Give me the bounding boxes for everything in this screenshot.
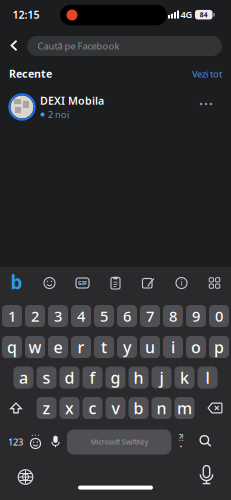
button[interactable]: More options: [196, 96, 216, 112]
button[interactable]: Bing search: [6, 275, 26, 291]
button[interactable]: i: [163, 336, 183, 358]
staticText: e: [53, 336, 62, 358]
button[interactable]: Clipboard: [105, 275, 125, 291]
staticText: 4G: [180, 8, 192, 21]
button[interactable]: z: [36, 397, 56, 419]
button[interactable]: a: [13, 366, 33, 388]
staticText: p: [214, 336, 224, 358]
button[interactable]: 2: [25, 305, 45, 327]
button[interactable]: 3: [48, 305, 68, 327]
staticText: 4: [77, 306, 85, 326]
staticText: 3: [54, 306, 62, 326]
staticText: 12:15: [12, 7, 39, 22]
button[interactable]: 5: [94, 305, 114, 327]
button[interactable]: l: [197, 366, 217, 388]
staticText: q: [7, 336, 17, 358]
staticText: 84: [200, 10, 208, 19]
staticText: i: [180, 278, 182, 288]
button[interactable]: Back: [6, 36, 22, 54]
button[interactable]: Shift: [2, 397, 30, 419]
staticText: ?!: [178, 433, 183, 443]
button[interactable]: m: [174, 397, 194, 419]
button[interactable]: 7: [140, 305, 160, 327]
button[interactable]: h: [128, 366, 148, 388]
button[interactable]: n: [151, 397, 171, 419]
staticText: t: [101, 336, 107, 358]
button[interactable]: p: [209, 336, 229, 358]
button[interactable]: y: [117, 336, 137, 358]
button[interactable]: DEXI Mobila: [5, 91, 190, 125]
button[interactable]: Switch keyboard: [15, 467, 35, 487]
button[interactable]: Info: [171, 275, 191, 291]
button[interactable]: Vezi tot: [192, 68, 222, 80]
staticText: f: [89, 367, 95, 388]
staticText: 5: [100, 306, 108, 326]
staticText: u: [145, 336, 155, 358]
button[interactable]: c: [82, 397, 102, 419]
staticText: c: [88, 397, 96, 419]
button[interactable]: Emoji keyboard: [27, 433, 43, 451]
button[interactable]: 1: [2, 305, 22, 327]
button[interactable]: Dictation: [196, 464, 216, 486]
button[interactable]: s: [36, 366, 56, 388]
staticText: a: [19, 367, 28, 388]
button[interactable]: t: [94, 336, 114, 358]
staticText: s: [42, 367, 50, 388]
button[interactable]: k: [174, 366, 194, 388]
staticText: w: [28, 336, 41, 358]
staticText: 1: [8, 306, 16, 326]
staticText: DEXI Mobila: [40, 93, 104, 108]
button[interactable]: g: [105, 366, 125, 388]
staticText: 9: [192, 306, 200, 326]
button[interactable]: Numbers: [2, 430, 28, 454]
staticText: o: [191, 336, 201, 358]
staticText: 2 noi: [48, 108, 69, 121]
staticText: Caută pe Facebook: [37, 40, 119, 52]
staticText: g: [110, 367, 120, 388]
button[interactable]: 0: [209, 305, 229, 327]
button[interactable]: More features: [204, 275, 224, 291]
staticText: i: [171, 336, 175, 358]
button[interactable]: Space: [67, 429, 171, 454]
button[interactable]: d: [59, 366, 79, 388]
staticText: n: [156, 397, 166, 419]
button[interactable]: q: [2, 336, 22, 358]
button[interactable]: u: [140, 336, 160, 358]
button[interactable]: GIFs: [72, 275, 92, 291]
staticText: 8: [169, 306, 177, 326]
button[interactable]: 8: [163, 305, 183, 327]
button[interactable]: Editor: [138, 275, 158, 291]
button[interactable]: 6: [117, 305, 137, 327]
button[interactable]: f: [82, 366, 102, 388]
button[interactable]: r: [71, 336, 91, 358]
staticText: v: [111, 397, 119, 419]
staticText: r: [77, 336, 84, 358]
button[interactable]: j: [151, 366, 171, 388]
staticText: y: [123, 336, 131, 358]
button[interactable]: v: [105, 397, 125, 419]
button[interactable]: Emoji: [39, 275, 59, 291]
button[interactable]: Voice typing: [47, 432, 63, 450]
button[interactable]: 4: [71, 305, 91, 327]
staticText: 7: [146, 306, 154, 326]
staticText: 6: [123, 306, 131, 326]
button[interactable]: Punctuation: [173, 432, 189, 452]
button[interactable]: Delete: [201, 397, 229, 419]
button[interactable]: b: [128, 397, 148, 419]
button[interactable]: w: [25, 336, 45, 358]
staticText: 2: [31, 306, 39, 326]
staticText: Vezi tot: [192, 68, 222, 80]
staticText: Microsoft SwiftKey: [91, 438, 148, 446]
staticText: 0: [215, 306, 223, 326]
button[interactable]: Search: [196, 432, 214, 450]
button[interactable]: 9: [186, 305, 206, 327]
button[interactable]: e: [48, 336, 68, 358]
staticText: k: [180, 367, 189, 388]
button[interactable]: o: [186, 336, 206, 358]
button[interactable]: x: [59, 397, 79, 419]
staticText: l: [205, 367, 209, 388]
staticText: m: [177, 397, 192, 419]
staticText: x: [65, 397, 74, 419]
button[interactable]: Caută pe Facebook: [27, 36, 222, 56]
staticText: d: [64, 367, 74, 388]
